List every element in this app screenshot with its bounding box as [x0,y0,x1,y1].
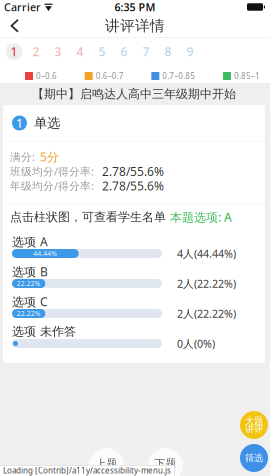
button[interactable]: 选项 未作答 [3,319,265,349]
button[interactable]: 2 [25,43,47,60]
staticText: 选项 A [12,233,48,249]
button[interactable]: 8 [157,43,179,60]
staticText: 【期中】启鸣达人高中三年级期中开始 [32,87,236,101]
button[interactable]: 下题 [148,448,183,476]
button[interactable]: 返回 [5,16,25,36]
button[interactable]: 5 [91,43,113,60]
staticText: 1 [10,43,17,59]
button[interactable]: 上题 [89,448,124,476]
button[interactable]: 1 [3,43,25,60]
staticText: 0人(0%) [177,336,215,351]
button[interactable]: 4 [69,43,91,60]
staticText: 6 [120,43,127,59]
staticText: 2.78/55.6% [102,178,164,194]
staticText: Loading [Contrib]/a11y/accessibility-men… [3,465,171,476]
staticText: 点击柱状图，可查看学生名单 [10,210,166,224]
staticText: 22.22% [17,279,41,288]
staticText: 4人(44.44%) [177,246,236,261]
button[interactable]: 3 [47,43,69,60]
staticText: 6:35 PM [114,0,155,14]
staticText: 5 [98,43,105,59]
button[interactable]: 6 [113,43,135,60]
staticText: 满分: [10,150,35,164]
staticText: 0.85–1 [234,71,260,81]
staticText: Carrier [4,0,41,14]
button[interactable]: 选项 A [3,229,265,259]
staticText: 讲评 [245,423,263,435]
staticText: 2.78/55.6% [102,163,164,179]
staticText: 年级均分/得分率: [10,179,94,193]
staticText: 22.22% [17,309,41,318]
staticText: 0.7–0.85 [162,71,195,81]
staticText: 7 [142,43,149,59]
staticText: 0–0.6 [36,71,57,81]
staticText: 下题 [154,457,176,470]
staticText: 班级均分/得分率: [10,164,94,178]
staticText: 44.44% [33,249,57,258]
button[interactable]: 9 [179,43,201,60]
staticText: 9 [186,43,193,59]
staticText: 0.6–0.7 [96,71,124,81]
staticText: 2人(22.22%) [177,276,236,291]
button[interactable]: 7 [135,43,157,60]
staticText: 选项 B [12,263,48,279]
staticText: 选项 未作答 [12,324,76,339]
staticText: 讲评详情 [105,17,165,35]
staticText: 上题 [95,457,117,470]
button[interactable]: 筛选 [238,444,270,472]
staticText: 3 [54,43,61,59]
staticText: 本题选项: A [170,209,232,225]
staticText: 1 [16,115,23,131]
staticText: 筛选 [245,452,263,464]
staticText: 选项 C [12,293,48,309]
button[interactable]: 选项 B [3,259,265,289]
button[interactable]: 大题讲评 [238,411,270,439]
staticText: 8 [164,43,171,59]
button[interactable]: 选项 C [3,289,265,319]
staticText: 大题 [245,415,263,427]
staticText: 2 [32,43,39,59]
staticText: 4 [76,43,83,59]
staticText: 2人(22.22%) [177,306,236,321]
staticText: 单选 [34,115,60,131]
staticText: 5分 [40,149,59,165]
